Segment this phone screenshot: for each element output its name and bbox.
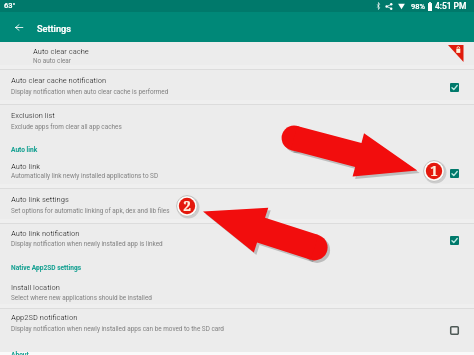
button[interactable]: Back [11, 19, 27, 35]
staticText: 4:51 PM [435, 1, 467, 11]
staticText: Install location [11, 283, 60, 292]
button[interactable]: Auto link [445, 163, 464, 182]
button[interactable]: Exclusion list [0, 104, 474, 139]
staticText: 1 [430, 162, 438, 180]
button[interactable]: Auto link notification [445, 230, 464, 249]
button[interactable]: Auto link [0, 156, 474, 188]
button[interactable]: App2SD notification [445, 320, 464, 339]
staticText: No auto clear [33, 57, 71, 65]
staticText: Native App2SD settings [11, 264, 82, 272]
staticText: Settings [37, 23, 71, 34]
staticText: Set options for automatic linking of apk… [11, 207, 170, 215]
button[interactable]: Install location [0, 273, 474, 308]
button[interactable]: Auto clear cache [0, 41, 474, 69]
button[interactable]: Auto link notification [0, 223, 474, 256]
button[interactable]: Auto clear cache notification [0, 69, 474, 104]
button[interactable]: App2SD notification [0, 308, 474, 351]
button[interactable]: Auto clear cache notification [445, 77, 464, 96]
staticText: Auto link notification [11, 229, 80, 238]
staticText: Automatically link newly installed appli… [11, 172, 159, 180]
staticText: Exclude apps from clear all app caches [11, 123, 122, 131]
staticText: 98% [411, 2, 426, 11]
staticText: Display notification when auto clear cac… [11, 88, 169, 96]
staticText: Auto clear cache [33, 47, 89, 56]
staticText: 2 [183, 197, 191, 215]
staticText: Auto link [11, 162, 41, 171]
staticText: Select where new applications should be … [11, 294, 152, 302]
staticText: Display notification when newly installe… [11, 325, 224, 333]
staticText: App2SD notification [11, 313, 78, 322]
staticText: Display notification when newly installe… [11, 240, 163, 248]
staticText: Exclusion list [11, 111, 55, 120]
staticText: Auto link [11, 146, 38, 154]
staticText: 63° [4, 1, 16, 10]
staticText: Auto clear cache notification [11, 76, 107, 85]
button[interactable]: Auto link settings [0, 188, 474, 223]
staticText: About [11, 351, 29, 355]
staticText: Auto link settings [11, 195, 69, 204]
